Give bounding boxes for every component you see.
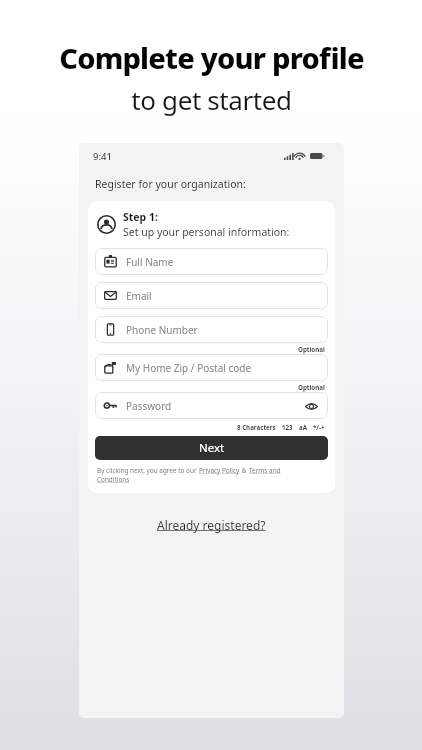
button[interactable]: My Home Zip / Postal code — [95, 354, 328, 381]
staticText: Already registered? — [157, 517, 266, 533]
staticText: */-+ — [313, 423, 325, 431]
staticText: Password — [126, 399, 172, 413]
staticText: Phone Number — [126, 323, 198, 337]
button[interactable]: Password — [95, 392, 328, 419]
staticText: Set up your personal information: — [123, 225, 290, 239]
button[interactable]: Show password — [303, 398, 319, 414]
staticText: Full Name — [126, 255, 174, 269]
staticText: Step 1: — [123, 210, 158, 224]
button[interactable]: Privacy Policy — [199, 466, 240, 475]
staticText: Optional — [298, 383, 325, 391]
staticText: Register for your organization: — [95, 177, 246, 191]
button[interactable]: Email — [95, 282, 328, 309]
staticText: Complete your profile — [59, 38, 364, 77]
staticText: Email — [126, 289, 152, 303]
staticText: My Home Zip / Postal code — [126, 361, 252, 375]
staticText: & — [240, 466, 249, 475]
staticText: Optional — [298, 345, 325, 353]
button[interactable]: Already registered? — [153, 513, 270, 537]
button[interactable]: Terms and — [249, 466, 281, 475]
staticText: By clicking next, you agree to our — [97, 466, 199, 475]
button[interactable]: Phone Number — [95, 316, 328, 343]
staticText: Terms and — [249, 466, 281, 475]
staticText: Next — [199, 440, 225, 456]
button[interactable]: Full Name — [95, 248, 328, 275]
staticText: 123 — [282, 423, 293, 431]
staticText: Privacy Policy — [199, 466, 240, 475]
staticText: aA — [299, 423, 307, 431]
button[interactable]: Conditions — [97, 475, 130, 484]
staticText: to get started — [131, 82, 292, 117]
staticText: 9:41 — [93, 150, 112, 163]
staticText: 8 Characters — [237, 423, 276, 431]
button[interactable]: Next — [95, 436, 328, 460]
